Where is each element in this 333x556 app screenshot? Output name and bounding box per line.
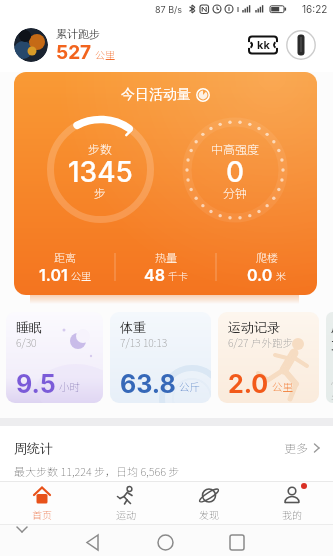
staticText: 我的: [282, 507, 302, 521]
button[interactable]: 周统计: [0, 426, 333, 481]
staticText: 公斤: [179, 379, 200, 394]
staticText: 48: [144, 265, 165, 284]
staticText: 快速检 的压力: [331, 377, 333, 403]
staticText: 87 B/s: [155, 4, 183, 15]
staticText: 运动记录: [228, 319, 280, 335]
staticText: 周统计: [14, 440, 53, 456]
staticText: 更多: [284, 439, 309, 456]
button[interactable]: 睡眠: [6, 312, 103, 403]
staticText: 16:22: [302, 3, 328, 15]
staticText: 爬楼: [256, 249, 278, 265]
staticText: 0: [226, 155, 245, 189]
staticText: 公里: [272, 379, 293, 394]
staticText: 527: [56, 41, 92, 64]
staticText: 公里: [95, 47, 115, 61]
staticText: 0.0: [247, 265, 273, 284]
button[interactable]: 运动: [84, 482, 167, 524]
staticText: 1345: [68, 155, 133, 189]
staticText: 6/27 户外跑步: [228, 335, 293, 350]
staticText: 7/13 10:13: [120, 335, 168, 350]
staticText: 公里: [71, 268, 91, 282]
button[interactable]: 运动记录: [218, 312, 319, 403]
button[interactable]: 体重: [110, 312, 211, 403]
staticText: 压力: [331, 319, 333, 353]
button[interactable]: 压力: [326, 312, 333, 403]
staticText: 体重: [120, 319, 146, 335]
staticText: 分钟: [223, 184, 248, 201]
staticText: 9.5: [16, 369, 56, 399]
staticText: 63.8: [120, 369, 176, 399]
staticText: 米: [276, 268, 286, 282]
staticText: 最大步数 11,224 步，日均 6,566 步: [14, 463, 180, 479]
staticText: 今日活动量: [121, 86, 191, 104]
button[interactable]: [286, 30, 316, 60]
staticText: 1.01: [39, 265, 68, 284]
staticText: 热量: [155, 249, 177, 265]
button[interactable]: 发现: [167, 482, 250, 524]
staticText: 距离: [54, 249, 76, 265]
staticText: 中高强度: [211, 140, 260, 157]
staticText: 运动: [116, 507, 136, 521]
staticText: 首页: [32, 507, 52, 521]
staticText: 2.0: [228, 369, 269, 399]
button[interactable]: 首页: [0, 482, 84, 524]
staticText: 千卡: [168, 268, 188, 282]
staticText: 累计跑步: [56, 27, 100, 41]
staticText: 睡眠: [16, 319, 42, 335]
staticText: 步: [94, 184, 107, 201]
button[interactable]: kk: [246, 28, 280, 62]
button[interactable]: [14, 28, 48, 62]
staticText: 步数: [88, 140, 113, 157]
button[interactable]: 我的: [250, 482, 333, 524]
staticText: 发现: [199, 507, 219, 521]
button[interactable]: 今日活动量: [14, 72, 317, 295]
staticText: 小时: [59, 379, 80, 394]
staticText: kk: [257, 38, 270, 51]
staticText: 6/30: [16, 335, 37, 350]
